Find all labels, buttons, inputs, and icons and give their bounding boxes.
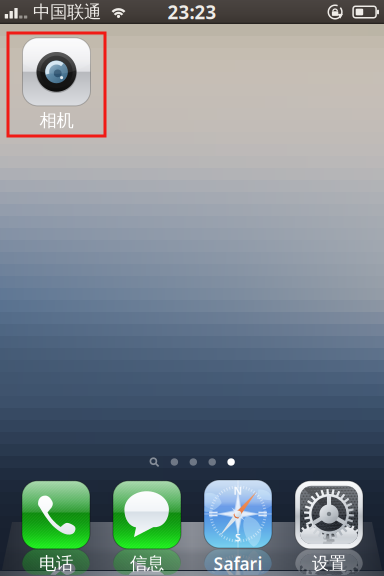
staticText: 电话 (39, 553, 73, 574)
staticText: 中国联通 (33, 1, 101, 23)
button[interactable]: 设置 (295, 481, 363, 574)
button[interactable]: N (204, 481, 272, 574)
button[interactable]: 电话 (22, 481, 90, 574)
staticText: 设置 (312, 553, 346, 574)
button[interactable]: 信息 (113, 481, 181, 574)
staticText: 相机 (39, 110, 73, 131)
staticText: N (233, 483, 242, 498)
staticText: Safari (213, 552, 262, 575)
staticText: 23:23 (167, 0, 216, 24)
staticText: 信息 (130, 553, 164, 574)
staticText: S (235, 530, 241, 545)
staticText: N (233, 552, 242, 567)
button[interactable]: 相机 (8, 33, 105, 136)
